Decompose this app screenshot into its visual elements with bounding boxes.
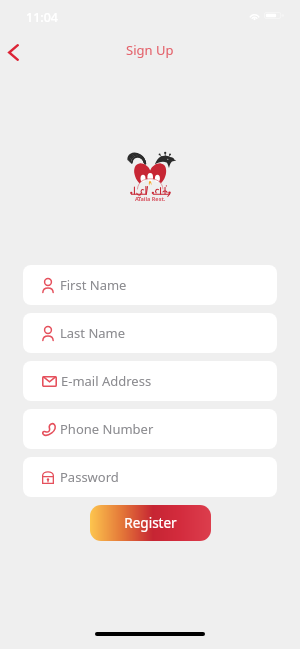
staticText: Last Name [60, 324, 126, 342]
button[interactable]: Last Name [23, 313, 277, 353]
staticText: Sign Up [126, 41, 174, 59]
button[interactable]: E-mail Address [23, 361, 277, 401]
button[interactable]: Password [23, 457, 277, 497]
staticText: Alaila Rest. [135, 195, 166, 202]
staticText: Password [60, 468, 119, 486]
button[interactable]: First Name [23, 265, 277, 305]
staticText: Register [124, 514, 177, 532]
button[interactable]: Back [0, 36, 29, 68]
staticText: First Name [60, 276, 127, 294]
button[interactable]: Register [90, 505, 211, 541]
staticText: 11:04 [26, 9, 59, 26]
staticText: E-mail Address [61, 372, 152, 390]
button[interactable]: Phone Number [23, 409, 277, 449]
staticText: Phone Number [60, 420, 154, 438]
